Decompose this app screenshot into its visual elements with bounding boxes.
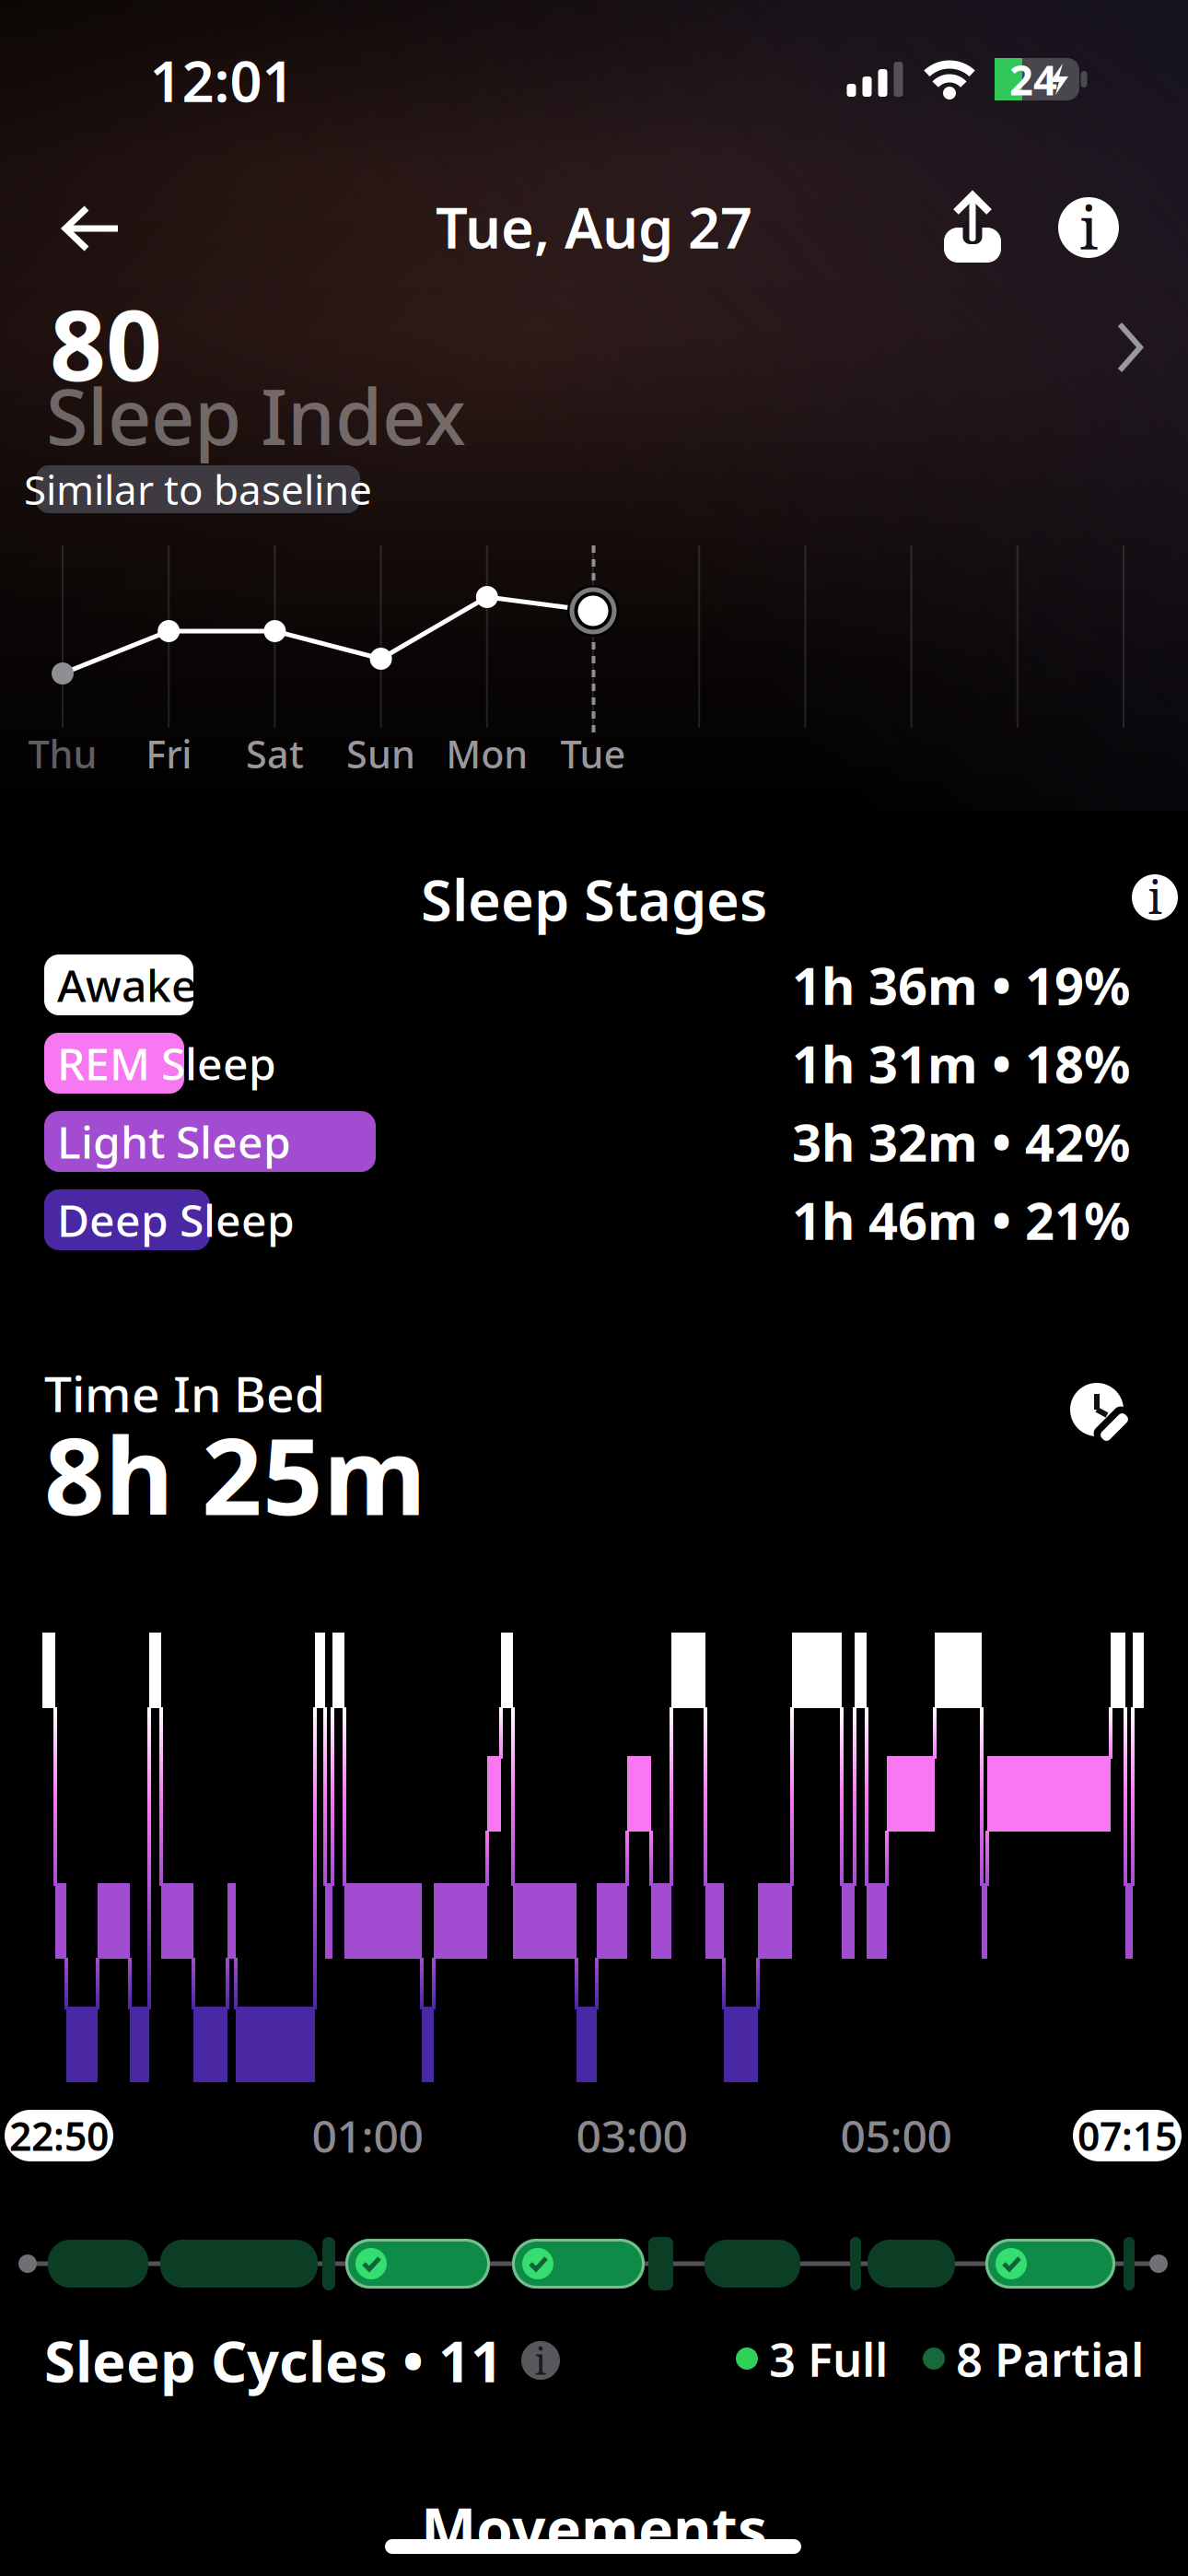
staticText: i <box>1148 866 1162 927</box>
button[interactable]: i <box>521 2335 560 2386</box>
staticText: Sleep Stages <box>421 862 767 937</box>
staticText: 22:50 <box>9 2110 109 2162</box>
button[interactable]: i <box>1132 874 1178 920</box>
staticText: 1h 36m • 19% <box>792 951 1131 1019</box>
staticText: 03:00 <box>576 2106 687 2165</box>
staticText: 12:01 <box>150 43 294 118</box>
staticText: 8 Partial <box>956 2328 1144 2390</box>
staticText: Movements <box>421 2489 767 2567</box>
staticText: 1h 31m • 18% <box>792 1029 1131 1097</box>
staticText: Sleep Cycles • 11 <box>44 2323 503 2398</box>
staticText: Mon <box>446 728 528 779</box>
button[interactable] <box>936 190 1009 267</box>
staticText: Time In Bed <box>44 1360 325 1426</box>
staticText: 24 <box>1009 52 1057 107</box>
staticText: Light Sleep <box>57 1112 291 1171</box>
staticText: 05:00 <box>840 2106 952 2165</box>
staticText: 8h 25m <box>44 1404 426 1544</box>
staticText: Tue <box>560 728 626 779</box>
staticText: Sun <box>346 728 415 779</box>
staticText: i <box>1079 187 1098 267</box>
button[interactable]: i <box>1058 197 1119 258</box>
staticText: 07:15 <box>1077 2110 1177 2162</box>
staticText: 3 Full <box>769 2328 888 2390</box>
staticText: Tue, Aug 27 <box>436 189 752 264</box>
staticText: 80 <box>50 278 162 408</box>
staticText: 01:00 <box>312 2106 423 2165</box>
staticText: i <box>535 2335 547 2386</box>
staticText: Fri <box>146 728 192 779</box>
staticText: Awake <box>57 955 197 1014</box>
staticText: Thu <box>28 728 97 779</box>
staticText: Sleep Index <box>46 365 466 466</box>
staticText: 1h 46m • 21% <box>792 1186 1131 1254</box>
staticText: 3h 32m • 42% <box>792 1107 1131 1176</box>
staticText: Deep Sleep <box>57 1190 295 1249</box>
button[interactable] <box>1066 1381 1136 1451</box>
button[interactable]: 80 <box>0 282 1188 466</box>
button[interactable] <box>57 192 140 265</box>
staticText: REM Sleep <box>57 1034 276 1092</box>
staticText: Similar to baseline <box>24 462 372 516</box>
staticText: Sat <box>246 728 304 779</box>
